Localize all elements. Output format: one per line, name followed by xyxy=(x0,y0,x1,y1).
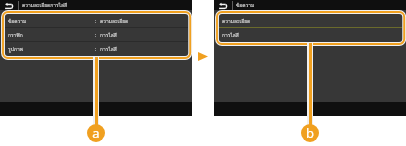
button[interactable]: การไล่สี xyxy=(217,28,404,42)
button[interactable]: กราฟิก xyxy=(3,28,190,42)
staticText: ความละเอียดการไล่สี xyxy=(22,1,68,9)
button[interactable]: Back xyxy=(214,0,232,10)
staticText: b xyxy=(306,124,314,142)
staticText: : xyxy=(95,18,97,25)
staticText: ข้อความ xyxy=(236,1,255,9)
staticText: : xyxy=(95,32,97,39)
staticText: รูปภาพ xyxy=(8,45,23,53)
staticText: การไล่สี xyxy=(100,45,117,53)
staticText: ข้อความ xyxy=(8,17,27,25)
staticText: : xyxy=(95,46,97,53)
staticText: กราฟิก xyxy=(8,31,23,39)
button[interactable]: ข้อความ xyxy=(3,14,190,28)
button[interactable]: รูปภาพ xyxy=(3,42,190,56)
button[interactable]: Callout a xyxy=(87,124,105,142)
staticText: การไล่สี xyxy=(100,31,117,39)
button[interactable]: Back xyxy=(0,0,18,10)
staticText: ความละเอียด xyxy=(100,17,129,25)
staticText: ความละเอียด xyxy=(222,17,251,25)
staticText: a xyxy=(92,124,100,142)
button[interactable]: Callout b xyxy=(301,124,319,142)
button[interactable]: ความละเอียด xyxy=(217,14,404,28)
staticText: การไล่สี xyxy=(222,31,239,39)
